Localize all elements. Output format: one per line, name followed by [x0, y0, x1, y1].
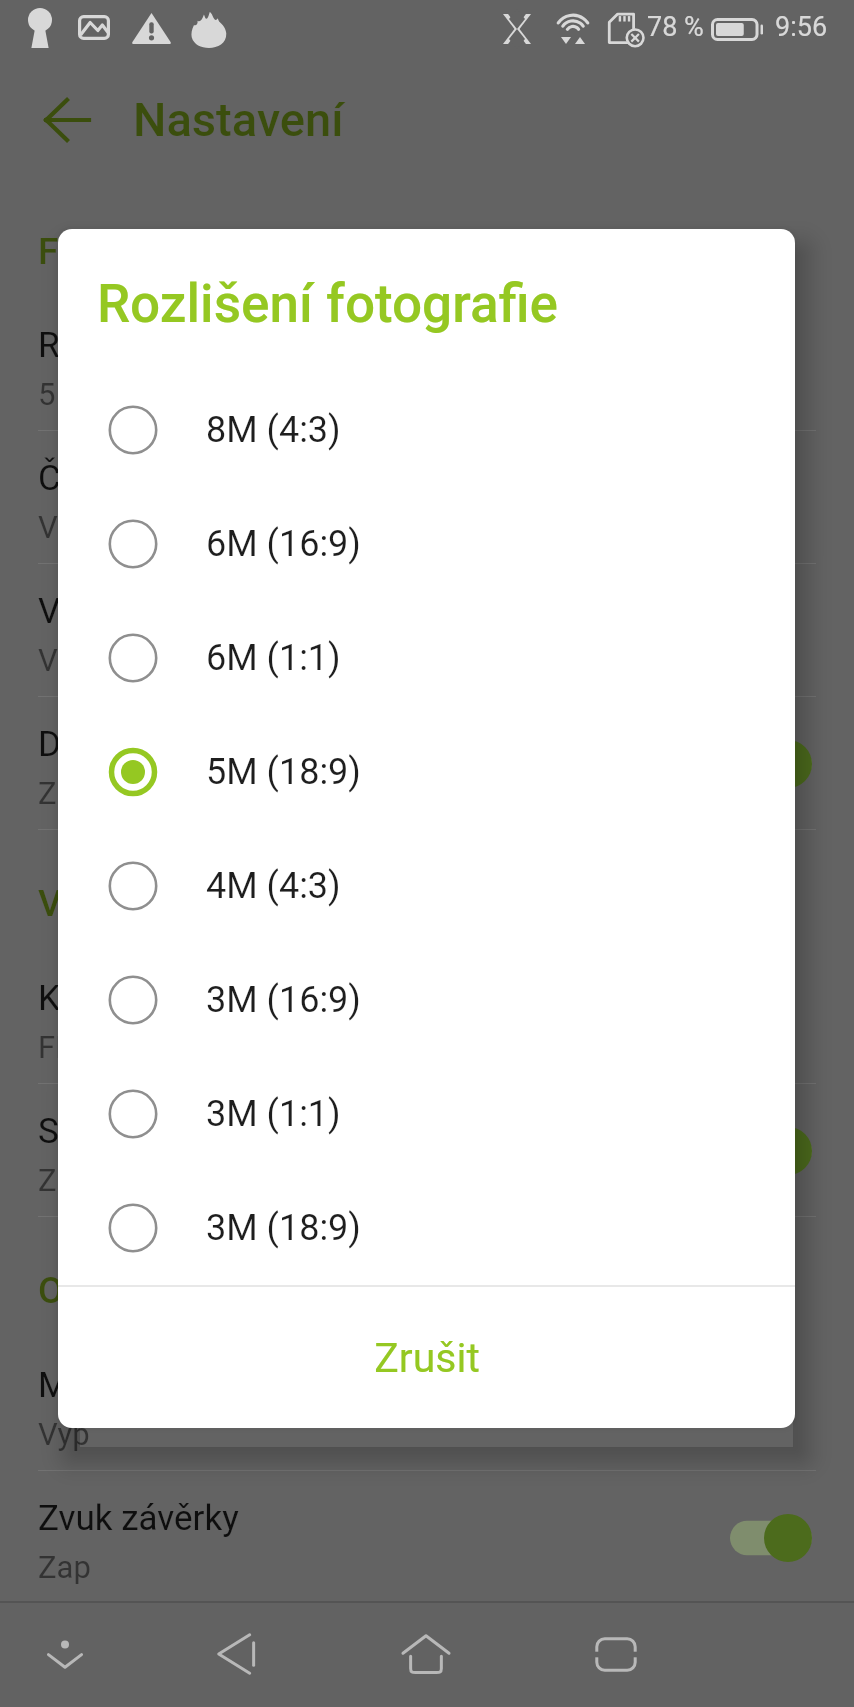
button[interactable]: Home — [386, 1614, 466, 1694]
button[interactable]: Back — [44, 97, 91, 143]
button[interactable]: Zrušit — [58, 1287, 795, 1428]
staticText: Vypnuto — [38, 642, 152, 678]
button[interactable]: 6M (1:1) — [58, 601, 795, 715]
button[interactable]: Hide navigation bar — [25, 1614, 105, 1694]
button[interactable]: 4M (4:3) — [58, 829, 795, 943]
staticText: 4M (4:3) — [206, 865, 341, 907]
button[interactable]: Kvalita videa — [0, 951, 854, 1084]
staticText: 3M (1:1) — [206, 1093, 341, 1135]
button[interactable]: 6M (16:9) — [58, 487, 795, 601]
staticText: Zapnuto — [38, 775, 153, 811]
staticText: 3M (18:9) — [206, 1207, 361, 1249]
staticText: 6M (16:9) — [206, 523, 361, 565]
button[interactable]: 8M (4:3) — [58, 373, 795, 487]
staticText: Zapnuto — [38, 1162, 153, 1198]
staticText: 6M (1:1) — [206, 637, 341, 679]
staticText: Kvalita videa — [38, 978, 235, 1019]
button[interactable]: Zvuk závěrky — [0, 1471, 854, 1604]
staticText: Stabilizace — [38, 1111, 208, 1152]
staticText: 5M (18:9) — [206, 751, 361, 793]
button[interactable]: Stabilizace — [0, 1084, 854, 1217]
staticText: FHD 1080p — [38, 1029, 193, 1065]
staticText: 9:56 — [775, 11, 828, 43]
button[interactable]: 3M (16:9) — [58, 943, 795, 1057]
button[interactable]: Recent apps — [576, 1614, 656, 1694]
staticText: Ostatní — [38, 1269, 158, 1312]
staticText: 3M (16:9) — [206, 979, 361, 1021]
button[interactable]: 3M (1:1) — [58, 1057, 795, 1171]
button[interactable]: Vodoznak — [0, 564, 854, 697]
staticText: Nastavení — [133, 92, 344, 147]
staticText: Časovač — [38, 458, 172, 499]
staticText: 78 % — [647, 11, 704, 43]
staticText: Vypnuto — [38, 509, 152, 545]
button[interactable]: 5M (18:9) — [58, 715, 795, 829]
staticText: 8M (4:3) — [206, 409, 341, 451]
staticText: Video — [38, 882, 134, 925]
button[interactable]: 3M (18:9) — [58, 1171, 795, 1285]
staticText: Rozlišení — [38, 325, 179, 366]
staticText: Vodoznak — [38, 591, 193, 632]
staticText: Mřížka — [38, 1365, 144, 1406]
staticText: Vyp — [38, 1416, 90, 1452]
button[interactable]: Rozlišení — [0, 298, 854, 431]
button[interactable]: Časovač — [0, 431, 854, 564]
staticText: Zvuk závěrky — [38, 1498, 239, 1539]
staticText: 5M (18:9) — [38, 376, 172, 412]
staticText: Rozlišení fotografie — [97, 273, 559, 335]
button[interactable]: Detekce úsměvu — [0, 697, 854, 830]
staticText: Fotografie — [38, 230, 207, 273]
staticText: Zrušit — [374, 1334, 480, 1382]
staticText: Detekce úsměvu — [38, 724, 296, 765]
button[interactable]: Back — [196, 1614, 276, 1694]
staticText: Zap — [38, 1549, 91, 1585]
button[interactable]: Mřížka — [0, 1338, 854, 1471]
